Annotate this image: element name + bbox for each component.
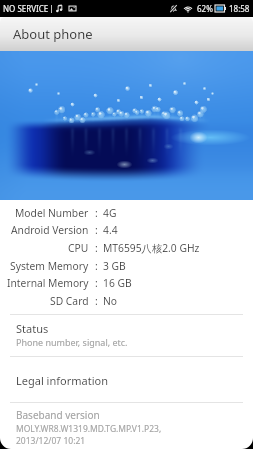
staticText: 3 GB [103,259,126,273]
staticText: 18:58 [229,3,250,14]
staticText: CPU [68,241,89,255]
staticText: About phone [13,25,93,43]
staticText: : [95,259,98,273]
staticText: Phone number, signal, etc. [16,336,128,348]
staticText: Internal Memory [7,276,89,290]
staticText: 16 GB [103,276,132,290]
staticText: 2013/12/07 10:21 [16,435,86,447]
staticText: MOLY.WR8.W1319.MD.TG.MP.V1.P23, [16,423,162,435]
staticText: No [103,294,118,308]
button[interactable]: About phone [0,17,253,51]
staticText: : [95,206,98,220]
staticText: : [95,294,98,308]
staticText: System Memory [10,259,89,273]
staticText: 4.4 [103,223,118,237]
image: Water splash banner [0,51,253,200]
staticText: : [95,241,98,255]
button[interactable]: Legal information [0,370,253,391]
staticText: : [95,223,98,237]
staticText: NO SERVICE [3,3,49,14]
staticText: SD Card [50,294,89,308]
staticText: Status [16,321,49,336]
staticText: Android Version [11,223,89,237]
staticText: Model Number [15,206,89,220]
staticText: 62% [197,3,213,14]
button[interactable]: Status [0,318,253,351]
staticText: 4G [103,206,117,220]
staticText: MT6595八核2.0 GHz [103,241,200,255]
staticText: : [95,276,98,290]
staticText: Baseband version [16,408,100,422]
staticText: Legal information [16,373,108,388]
